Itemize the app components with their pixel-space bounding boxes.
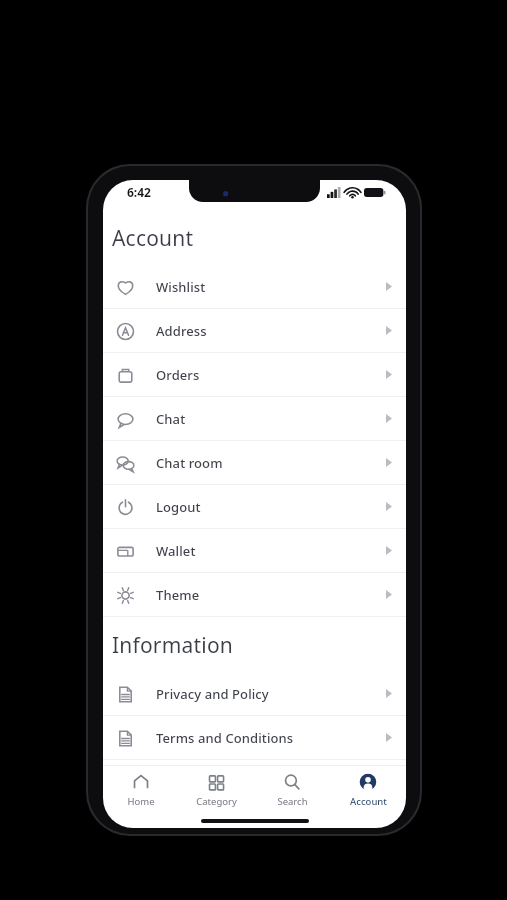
staticText: 6:42 — [127, 184, 151, 200]
staticText: Home — [127, 795, 155, 808]
button[interactable]: Wishlist — [103, 265, 406, 308]
button[interactable]: Category — [178, 766, 254, 814]
staticText: Address — [156, 322, 207, 340]
button[interactable]: Chat room — [103, 441, 406, 484]
button[interactable]: Search — [254, 766, 330, 814]
button[interactable]: Terms and Conditions — [103, 716, 406, 759]
button[interactable]: Chat — [103, 397, 406, 440]
staticText: Wishlist — [156, 278, 206, 296]
staticText: Chat room — [156, 454, 223, 472]
button[interactable]: Privacy and Policy — [103, 672, 406, 715]
staticText: Terms and Conditions — [156, 729, 294, 747]
staticText: Orders — [156, 366, 200, 384]
button[interactable]: Home — [103, 766, 178, 814]
button[interactable]: Address — [103, 309, 406, 352]
staticText: Privacy and Policy — [156, 685, 269, 703]
staticText: Account — [112, 224, 194, 253]
staticText: Search — [277, 795, 308, 808]
staticText: Wallet — [156, 542, 196, 560]
staticText: Logout — [156, 498, 201, 516]
staticText: Information — [112, 631, 233, 660]
button[interactable]: Logout — [103, 485, 406, 528]
button[interactable]: Orders — [103, 353, 406, 396]
button[interactable]: Theme — [103, 573, 406, 616]
button[interactable]: Wallet — [103, 529, 406, 572]
staticText: Category — [196, 795, 237, 808]
staticText: Chat — [156, 410, 186, 428]
staticText: Theme — [156, 586, 200, 604]
button[interactable]: Account — [330, 766, 406, 814]
staticText: Account — [350, 795, 387, 808]
